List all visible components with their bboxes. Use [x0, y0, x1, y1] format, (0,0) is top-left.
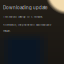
staticText: Downloading update [3, 5, 48, 10]
staticText: restart. [3, 29, 11, 33]
staticText: This should take up to 5 minutes. [3, 15, 43, 18]
staticText: Afterwards, the phone will automatically [3, 23, 51, 26]
